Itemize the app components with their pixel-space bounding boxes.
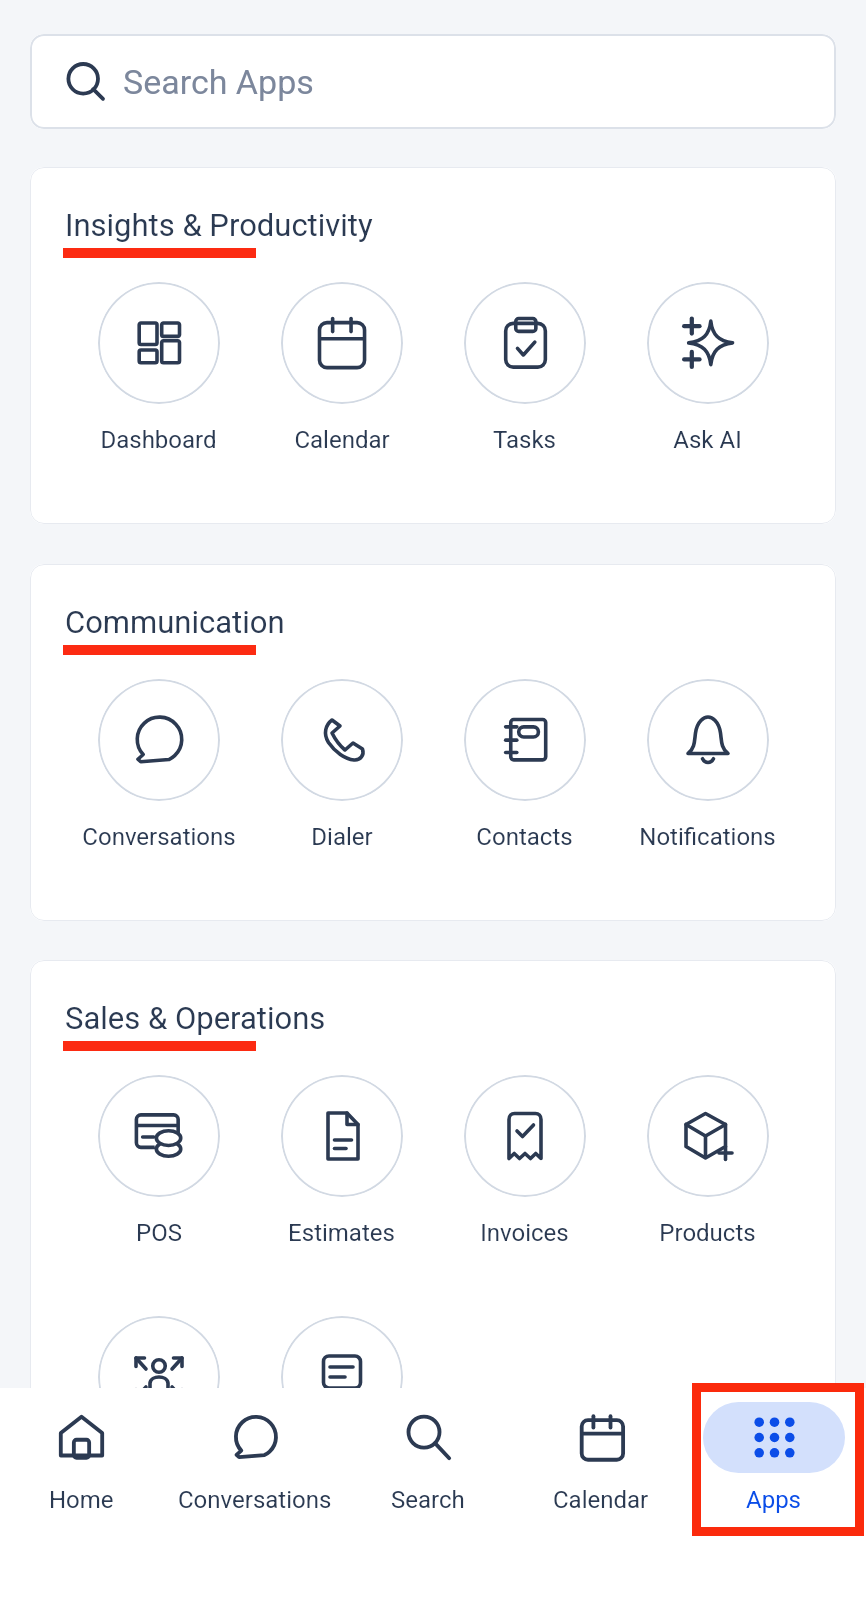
staticText: Conversations: [82, 823, 236, 851]
staticText: Calendar: [294, 426, 390, 454]
button[interactable]: POS: [67, 1075, 250, 1247]
button[interactable]: Notifications: [616, 679, 799, 851]
button[interactable]: Ask AI: [616, 282, 799, 454]
staticText: Search Apps: [123, 62, 314, 102]
button[interactable]: Search: [30, 34, 836, 129]
staticText: Estimates: [288, 1219, 395, 1247]
button[interactable]: Reports: [250, 1316, 433, 1488]
button[interactable]: Dashboard: [67, 282, 250, 454]
other: Search: [65, 62, 105, 102]
staticText: Communication: [65, 604, 285, 640]
button[interactable]: Home: [0, 1388, 168, 1514]
button[interactable]: Dialer: [250, 679, 433, 851]
staticText: Dashboard: [100, 426, 217, 454]
staticText: Invoices: [480, 1219, 569, 1247]
staticText: Notifications: [639, 823, 776, 851]
staticText: POS: [136, 1219, 182, 1247]
staticText: Tasks: [493, 426, 556, 454]
staticText: Products: [659, 1219, 756, 1247]
button[interactable]: Search: [341, 1388, 514, 1514]
button[interactable]: Leads: [67, 1316, 250, 1488]
button[interactable]: Tasks: [433, 282, 616, 454]
staticText: Insights & Productivity: [65, 207, 373, 243]
button[interactable]: Conversations: [67, 679, 250, 851]
staticText: Dialer: [311, 823, 373, 851]
button[interactable]: Estimates: [250, 1075, 433, 1247]
staticText: Conversations: [178, 1486, 332, 1514]
button[interactable]: Apps: [687, 1388, 860, 1514]
staticText: Sales & Operations: [65, 1000, 326, 1036]
button[interactable]: Contacts: [433, 679, 616, 851]
button[interactable]: Conversations: [168, 1388, 341, 1514]
staticText: Contacts: [476, 823, 573, 851]
button[interactable]: Calendar: [250, 282, 433, 454]
staticText: Search: [391, 1486, 465, 1514]
button[interactable]: Products: [616, 1075, 799, 1247]
button[interactable]: Calendar: [514, 1388, 687, 1514]
staticText: Calendar: [553, 1486, 649, 1514]
button[interactable]: Invoices: [433, 1075, 616, 1247]
staticText: Ask AI: [673, 426, 742, 454]
staticText: Home: [49, 1486, 114, 1514]
staticText: Apps: [746, 1486, 801, 1514]
